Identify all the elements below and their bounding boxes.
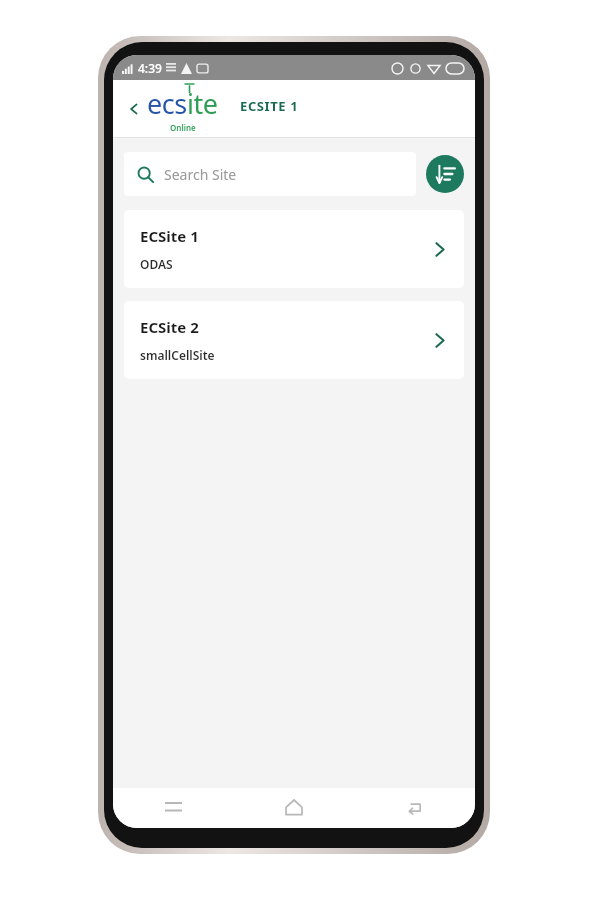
button[interactable]: Back bbox=[354, 788, 475, 828]
button[interactable]: ECSite 1 bbox=[124, 210, 464, 288]
staticText: 4:39 bbox=[138, 60, 162, 76]
button[interactable]: Sort bbox=[426, 155, 464, 193]
staticText: ECSite 1 bbox=[140, 226, 199, 246]
staticText: ECSite 2 bbox=[140, 317, 199, 337]
staticText: Online bbox=[170, 122, 196, 133]
button[interactable]: Search Site bbox=[124, 152, 416, 196]
button[interactable]: Recents bbox=[113, 788, 233, 828]
staticText: ecs bbox=[147, 85, 187, 122]
button[interactable]: ECSite 2 bbox=[124, 301, 464, 379]
staticText: smallCellSite bbox=[140, 347, 215, 363]
staticText: Search Site bbox=[164, 165, 237, 184]
staticText: ODAS bbox=[140, 256, 173, 272]
button[interactable]: Home bbox=[233, 788, 354, 828]
button[interactable]: Back bbox=[123, 98, 145, 120]
staticText: ite bbox=[187, 85, 218, 122]
staticText: ECSITE 1 bbox=[240, 97, 299, 115]
